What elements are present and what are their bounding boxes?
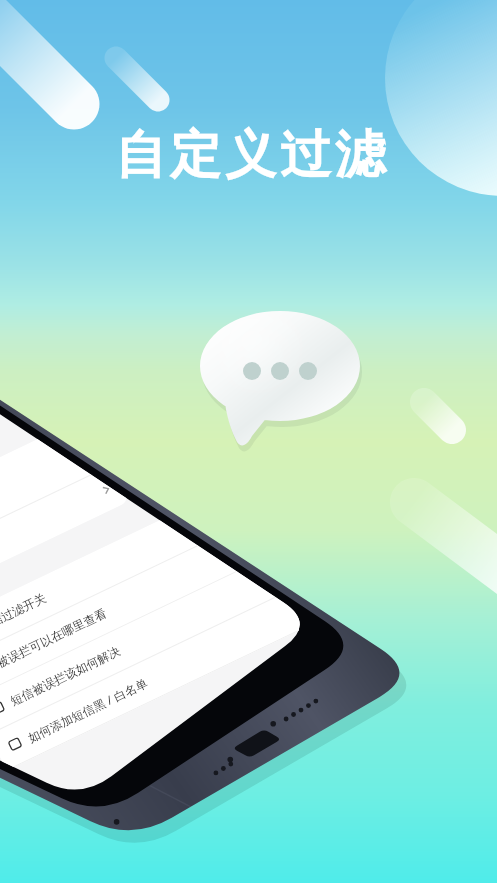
button[interactable]: 垃圾短信过滤开关 [0, 478, 264, 662]
button[interactable]: 如何添加短信黑 / 白名单 [0, 586, 316, 770]
staticText: 如何添加短信黑 / 白名单 [25, 674, 150, 745]
button[interactable]: 短信被误拦可以在哪里查看 [0, 514, 282, 698]
staticText: 自定义过滤 [113, 123, 388, 187]
button[interactable]: 短信被误拦该如何解决 [0, 550, 299, 734]
staticText: 短信被误拦可以在哪里查看 [0, 605, 109, 681]
staticText: 垃圾短信过滤开关 [0, 590, 48, 645]
staticText: 短信被误拦该如何解决 [8, 643, 122, 708]
